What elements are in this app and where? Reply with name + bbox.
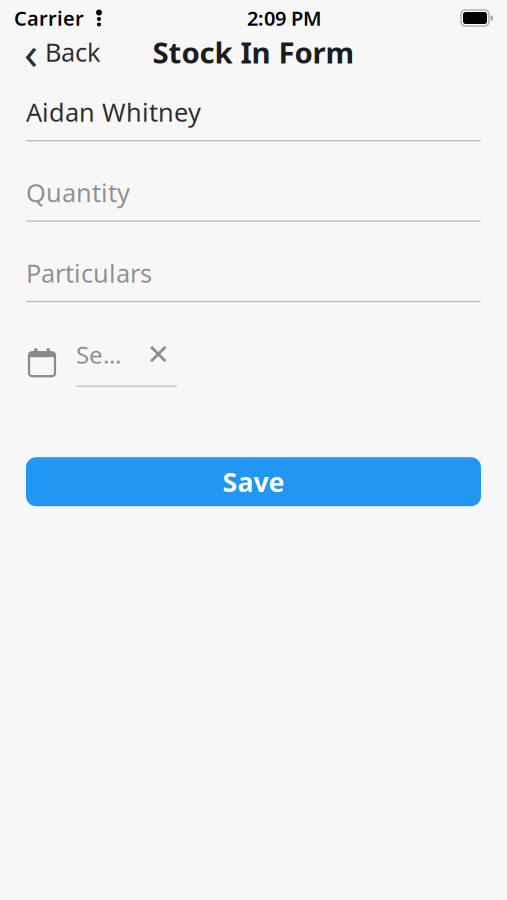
- button[interactable]: Save: [26, 457, 481, 506]
- staticText: Particulars: [26, 256, 152, 290]
- staticText: 2:09 PM: [247, 5, 322, 31]
- staticText: Carrier: [14, 5, 84, 31]
- staticText: Quantity: [26, 176, 130, 209]
- staticText: ‹: [24, 22, 38, 82]
- button[interactable]: Choose date: [26, 341, 58, 385]
- staticText: Aidan Whitney: [26, 95, 201, 129]
- button[interactable]: ‹: [14, 16, 111, 88]
- staticText: Back: [45, 35, 101, 69]
- staticText: Save: [222, 464, 284, 499]
- staticText: Stock In Form: [152, 32, 354, 71]
- staticText: Se...: [76, 339, 121, 370]
- staticText: ✕: [146, 339, 169, 370]
- button[interactable]: Clear date: [145, 341, 171, 367]
